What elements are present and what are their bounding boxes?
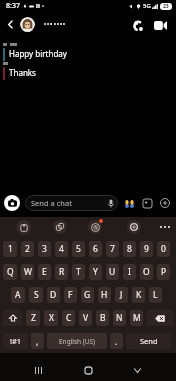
staticText: T — [76, 266, 81, 278]
staticText: 8 — [127, 243, 132, 255]
button[interactable]: Translate — [88, 220, 102, 234]
staticText: U — [109, 266, 116, 278]
button[interactable]: E — [38, 264, 51, 280]
button[interactable]: T — [72, 264, 85, 280]
button[interactable]: 5 — [72, 241, 85, 257]
staticText: M — [133, 312, 141, 324]
button[interactable]: D — [47, 287, 60, 303]
staticText: K — [136, 289, 142, 301]
button[interactable]: Clipboard — [16, 220, 31, 235]
staticText: H — [101, 289, 108, 301]
button[interactable]: Settings — [127, 220, 141, 234]
staticText: 7 — [110, 243, 115, 255]
button[interactable]: 1 — [3, 241, 17, 257]
button[interactable]: !#1 — [3, 333, 28, 349]
staticText: C — [66, 312, 72, 324]
staticText: English (US) — [59, 337, 96, 346]
button[interactable]: N — [113, 310, 126, 326]
staticText: 1 — [8, 243, 13, 255]
button[interactable]: Stickers — [140, 196, 154, 210]
button[interactable]: Call — [127, 15, 149, 37]
button[interactable]: , — [31, 333, 44, 349]
button[interactable]: Backspace — [147, 310, 173, 326]
button[interactable]: 6 — [89, 241, 102, 257]
button[interactable]: 9 — [140, 241, 153, 257]
button[interactable]: 7 — [106, 241, 119, 257]
staticText: A — [15, 289, 21, 301]
button[interactable]: 4 — [55, 241, 68, 257]
button[interactable]: G — [81, 287, 94, 303]
staticText: 5G — [143, 2, 151, 10]
staticText: F — [68, 289, 73, 301]
staticText: D — [50, 289, 57, 301]
staticText: , — [36, 336, 39, 347]
button[interactable]: F — [64, 287, 77, 303]
staticText: R — [59, 266, 65, 278]
staticText: Send — [140, 336, 158, 346]
staticText: 23 — [163, 3, 169, 10]
button[interactable]: Emoji — [122, 196, 136, 210]
button[interactable]: B — [96, 310, 109, 326]
button[interactable]: Profile — [20, 17, 35, 32]
button[interactable]: 0 — [157, 241, 170, 257]
button[interactable]: S — [29, 287, 43, 303]
button[interactable]: 3 — [38, 241, 51, 257]
button[interactable]: R — [55, 264, 68, 280]
staticText: E — [42, 266, 47, 278]
staticText: 6 — [93, 243, 98, 255]
staticText: Thanks — [9, 67, 36, 78]
button[interactable]: P — [157, 264, 170, 280]
button[interactable]: English (US) — [47, 333, 107, 349]
staticText: !#1 — [10, 336, 22, 346]
button[interactable]: X — [44, 310, 58, 326]
staticText: 0 — [161, 243, 166, 255]
staticText: Y — [93, 266, 98, 278]
staticText: Send a chat — [31, 198, 72, 208]
button[interactable]: 2 — [21, 241, 34, 257]
staticText: I — [128, 266, 131, 278]
button[interactable]: C — [62, 310, 75, 326]
staticText: V — [83, 312, 89, 324]
button[interactable]: Send — [126, 333, 171, 349]
button[interactable]: Shift — [3, 310, 22, 326]
staticText: 9 — [144, 243, 149, 255]
button[interactable]: W — [21, 264, 34, 280]
button[interactable]: . — [110, 333, 123, 349]
button[interactable]: I — [123, 264, 136, 280]
button[interactable]: Home — [76, 358, 100, 381]
button[interactable]: A — [11, 287, 25, 303]
staticText: 2 — [25, 243, 30, 255]
button[interactable]: Q — [3, 264, 17, 280]
button[interactable]: Camera — [4, 195, 20, 211]
button[interactable]: 8 — [123, 241, 136, 257]
button[interactable]: Back — [125, 358, 149, 381]
button[interactable]: GIF — [53, 220, 67, 234]
button[interactable]: K — [132, 287, 145, 303]
staticText: Happy birthday — [9, 48, 67, 59]
button[interactable]: L — [149, 287, 162, 303]
button[interactable]: More options — [157, 219, 173, 235]
staticText: . — [115, 336, 118, 347]
button[interactable]: O — [140, 264, 153, 280]
staticText: B — [100, 312, 106, 324]
button[interactable]: Z — [26, 310, 40, 326]
button[interactable]: Recent apps — [26, 358, 50, 381]
staticText: S — [34, 289, 39, 301]
button[interactable]: Back — [0, 14, 20, 34]
staticText: 8:37 — [6, 1, 20, 11]
button[interactable]: Y — [89, 264, 102, 280]
button[interactable]: Add — [158, 196, 172, 210]
staticText: N — [116, 312, 123, 324]
staticText: L — [153, 289, 158, 301]
button[interactable]: M — [130, 310, 143, 326]
button[interactable]: V — [79, 310, 92, 326]
button[interactable]: J — [115, 287, 128, 303]
button[interactable]: H — [98, 287, 111, 303]
staticText: J — [120, 289, 123, 301]
button[interactable]: Send a chat — [25, 195, 118, 211]
staticText: G — [84, 289, 91, 301]
staticText: 3 — [42, 243, 47, 255]
button[interactable]: Video call — [149, 14, 171, 36]
staticText: P — [161, 266, 167, 278]
button[interactable]: U — [106, 264, 119, 280]
